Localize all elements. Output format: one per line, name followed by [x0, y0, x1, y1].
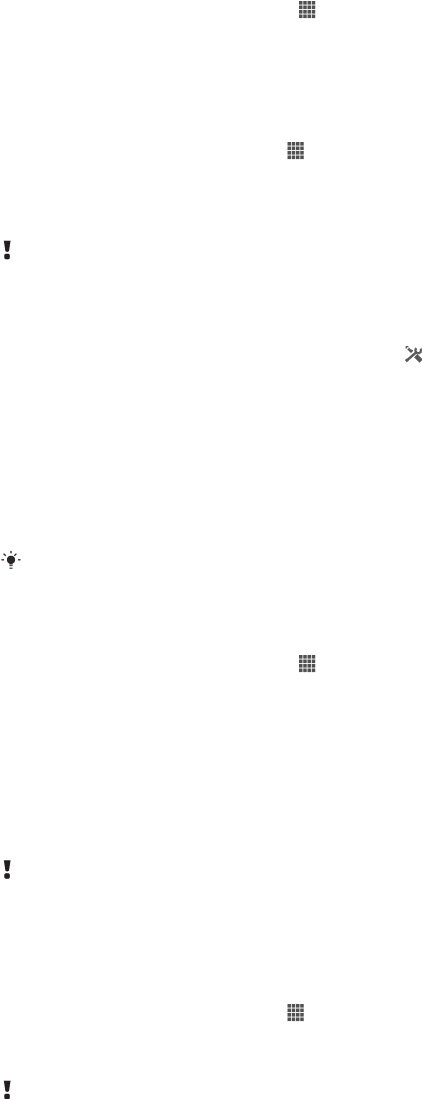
button[interactable]: Apps	[299, 1, 316, 19]
button[interactable]: Apps	[287, 142, 304, 160]
button[interactable]: Apps	[287, 1004, 304, 1022]
button[interactable]: Settings	[405, 345, 422, 362]
button[interactable]: Apps	[299, 655, 316, 673]
